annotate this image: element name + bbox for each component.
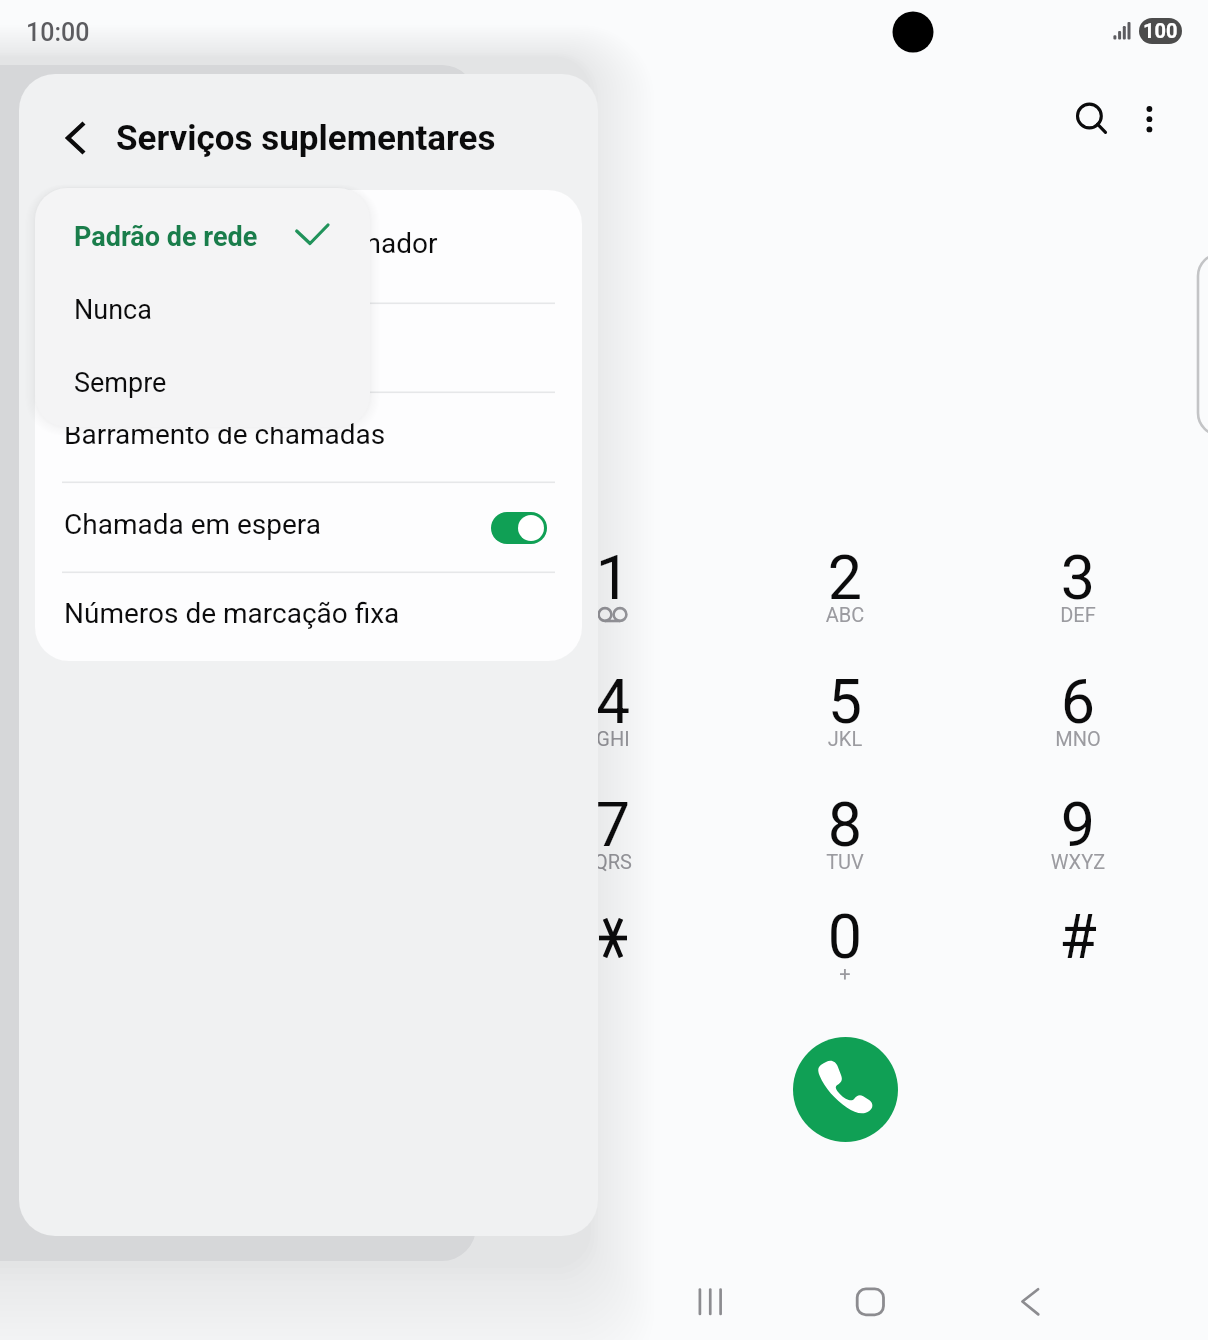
button[interactable]: Padrão de rede bbox=[74, 214, 304, 270]
button[interactable]: More options bbox=[1119, 84, 1179, 144]
staticText: 2 bbox=[760, 542, 930, 613]
staticText: ID de chamadas do originador bbox=[64, 227, 438, 260]
staticText: 100 bbox=[1143, 19, 1178, 42]
button[interactable]: 4 bbox=[528, 646, 698, 776]
staticText: 0 bbox=[760, 901, 930, 972]
button[interactable]: 6 bbox=[993, 646, 1163, 776]
button[interactable]: Search bbox=[1055, 84, 1123, 152]
staticText: # bbox=[993, 901, 1163, 972]
staticText: ABC bbox=[760, 603, 930, 626]
button[interactable]: 5 bbox=[760, 646, 930, 776]
button[interactable]: # bbox=[993, 881, 1163, 1011]
staticText: QRS bbox=[528, 850, 698, 873]
button[interactable]: 0 bbox=[760, 881, 930, 1011]
staticText: WXYZ bbox=[993, 850, 1163, 873]
button[interactable]: 3 bbox=[993, 522, 1163, 652]
staticText: 10:00 bbox=[26, 18, 90, 47]
button[interactable]: Chamada em espera bbox=[35, 482, 582, 572]
staticText: 7 bbox=[528, 789, 698, 860]
staticText: JKL bbox=[760, 727, 930, 750]
staticText: 6 bbox=[993, 666, 1163, 737]
button[interactable]: 7 bbox=[528, 769, 698, 899]
staticText: 4 bbox=[528, 666, 698, 737]
button[interactable]: Sempre bbox=[74, 360, 304, 412]
staticText: 5 bbox=[760, 666, 930, 737]
button[interactable]: Back bbox=[998, 1265, 1068, 1335]
button[interactable]: 8 bbox=[760, 769, 930, 899]
button[interactable]: 9 bbox=[993, 769, 1163, 899]
button[interactable]: Números de marcação fixa bbox=[35, 572, 582, 661]
button[interactable] bbox=[528, 881, 698, 1011]
staticText: 9 bbox=[993, 789, 1163, 860]
button[interactable]: Barramento de chamadas bbox=[35, 392, 582, 482]
button[interactable]: 2 bbox=[760, 522, 930, 652]
staticText: + bbox=[760, 962, 930, 985]
staticText: Números de marcação fixa bbox=[64, 597, 400, 630]
button[interactable]: Navigate up bbox=[42, 112, 102, 172]
button[interactable]: Call bbox=[793, 1037, 898, 1142]
button[interactable]: Nunca bbox=[74, 287, 304, 339]
staticText: MNO bbox=[993, 727, 1163, 750]
staticText: Padrão de rede bbox=[74, 221, 258, 253]
staticText: 8 bbox=[760, 789, 930, 860]
staticText: Sempre bbox=[74, 367, 167, 399]
button[interactable]: 1 bbox=[528, 522, 698, 652]
staticText: 3 bbox=[993, 542, 1163, 613]
button[interactable]: ID de chamadas do originador bbox=[35, 190, 582, 303]
staticText: TUV bbox=[760, 850, 930, 873]
staticText: GHI bbox=[528, 727, 698, 750]
button[interactable]: Encaminhar chamadas bbox=[35, 303, 582, 392]
staticText: Serviços suplementares bbox=[116, 118, 496, 159]
staticText: Chamada em espera bbox=[64, 508, 322, 541]
button[interactable]: Recents bbox=[675, 1265, 745, 1335]
staticText: Nunca bbox=[74, 294, 152, 326]
staticText: 1 bbox=[528, 542, 698, 613]
staticText: DEF bbox=[993, 603, 1163, 626]
button[interactable]: Home bbox=[835, 1265, 905, 1335]
staticText: Barramento de chamadas bbox=[64, 418, 386, 451]
